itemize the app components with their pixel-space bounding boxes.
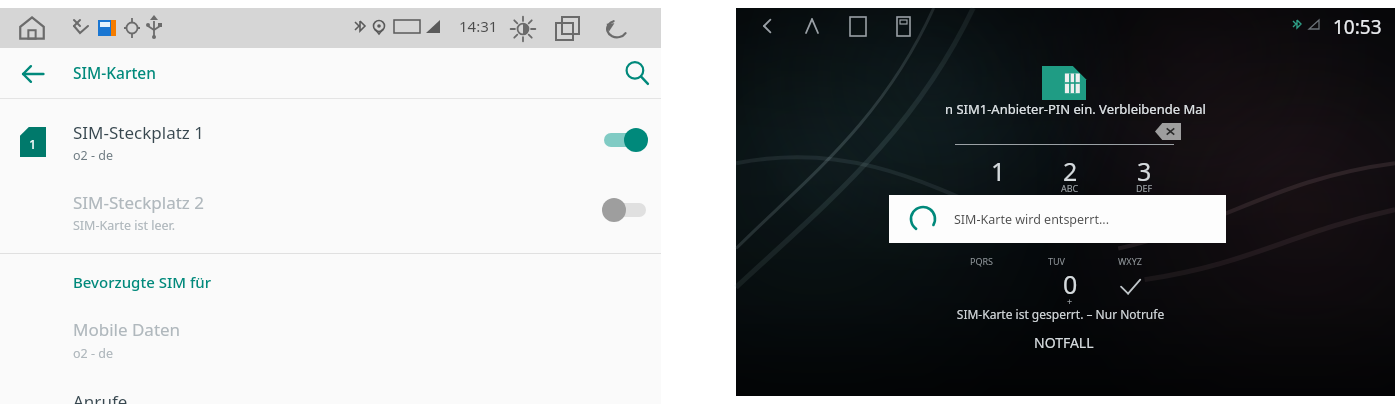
staticText: + (1067, 295, 1073, 307)
button[interactable]: Recents (556, 17, 580, 41)
staticText: SIM-Karte ist leer. (73, 217, 176, 234)
staticText: SIM-Steckplatz 1 (73, 121, 204, 144)
button[interactable]: 0 (1046, 267, 1094, 307)
button[interactable]: Delete (1155, 123, 1181, 140)
button[interactable]: 5 (1046, 190, 1094, 202)
staticText: 5 (1063, 190, 1078, 202)
button[interactable]: 6 (1120, 190, 1168, 202)
staticText: 14:31 (459, 16, 498, 36)
staticText: o2 - de (73, 147, 113, 164)
button[interactable]: Switch on (600, 127, 650, 153)
staticText: 4 (991, 190, 1006, 202)
button[interactable]: SIM (894, 17, 914, 37)
button[interactable]: 2 (1046, 154, 1094, 194)
staticText: TUV (1048, 255, 1065, 267)
staticText: 1 (991, 154, 1006, 188)
button[interactable]: Search (624, 60, 650, 86)
button[interactable]: SIM-Steckplatz 2 (0, 175, 661, 245)
staticText: 1 (29, 135, 37, 153)
staticText: PQRS (970, 255, 994, 267)
staticText: 6 (1137, 190, 1152, 202)
button[interactable]: 3 (1120, 154, 1168, 194)
staticText: WXYZ (1118, 255, 1142, 267)
staticText: o2 - de (73, 345, 113, 362)
button[interactable]: Recents (848, 17, 868, 37)
staticText: Mobile Daten (73, 318, 181, 341)
staticText: Bevorzugte SIM für (73, 272, 211, 292)
staticText: DEF (1136, 182, 1153, 194)
button[interactable]: 1 (0, 105, 661, 175)
staticText: SIM-Karte ist gesperrt. – Nur Notrufe (731, 306, 1390, 322)
staticText: SIM-Karte wird entsperrt... (954, 211, 1109, 228)
button[interactable]: Home (802, 16, 822, 36)
staticText: 0 (1063, 267, 1078, 301)
button[interactable]: 4 (974, 190, 1022, 202)
staticText: 2 (1063, 154, 1078, 188)
button[interactable]: 1 (974, 154, 1022, 194)
staticText: 3 (1137, 154, 1152, 188)
button[interactable]: Back (20, 61, 46, 87)
staticText: n SIM1-Anbieter-PIN ein. Verbleibende Ma… (945, 100, 1206, 118)
button[interactable]: Back (758, 16, 778, 36)
button[interactable]: NOTFALL (1004, 330, 1124, 354)
button[interactable]: Switch off (600, 197, 650, 223)
staticText: Anrufe (73, 390, 128, 404)
button[interactable]: Home (18, 14, 46, 42)
staticText: 10:53 (1333, 14, 1382, 40)
button[interactable]: Confirm (1114, 270, 1146, 302)
button[interactable]: Back (604, 16, 630, 42)
staticText: SIM-Steckplatz 2 (73, 191, 204, 214)
button[interactable]: SIM-Karte wird entsperrt... (889, 195, 1226, 243)
staticText: NOTFALL (1034, 333, 1094, 352)
staticText: SIM-Karten (73, 62, 156, 83)
button[interactable]: Brightness (510, 16, 536, 42)
staticText: ABC (1061, 182, 1079, 194)
